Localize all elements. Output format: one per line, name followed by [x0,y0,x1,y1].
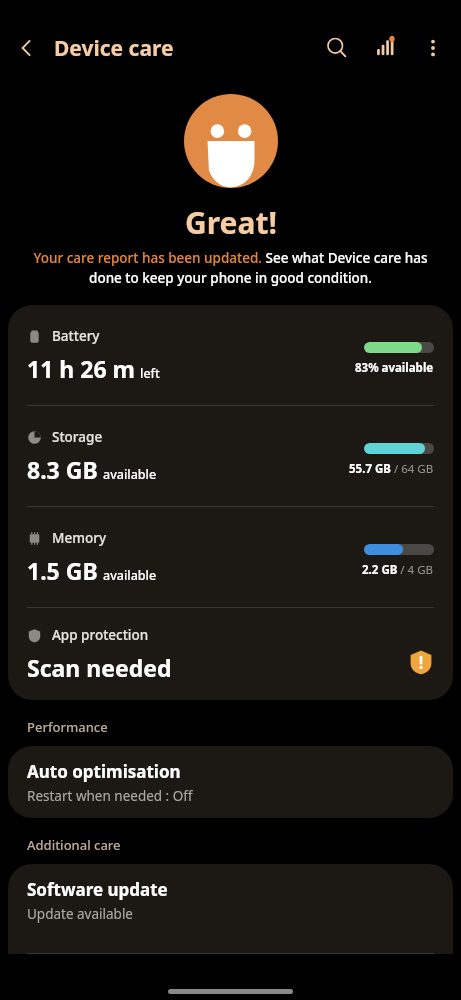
staticText: Storage [52,428,103,446]
button[interactable]: Memory [8,507,453,607]
staticText: Auto optimisation [27,760,181,783]
staticText: Software update [27,878,168,901]
staticText: left [140,365,160,382]
button[interactable]: More options [409,24,457,72]
staticText: Your care report has been updated. See w… [28,249,433,287]
button[interactable]: Storage [8,406,453,506]
staticText: 2.2 GB / 4 GB [362,562,434,578]
staticText: 8.3 GB [27,454,98,485]
staticText: 1.5 GB [27,555,98,586]
staticText: available [103,567,157,584]
staticText: Additional care [27,836,121,854]
staticText: Great! [185,202,277,243]
staticText: available [103,466,157,483]
staticText: 83% available [355,360,434,376]
staticText: Scan needed [27,652,172,683]
staticText: Memory [52,529,107,547]
button[interactable]: Auto optimisation [8,746,453,818]
button[interactable]: Battery [8,305,453,405]
staticText: Battery [52,327,100,345]
staticText: 11 h 26 m [27,353,135,384]
button[interactable]: App protection [8,608,453,700]
staticText: App protection [52,626,149,644]
staticText: Device care [54,34,174,63]
staticText: Update available [27,905,133,923]
button[interactable]: Software update [8,864,453,954]
button[interactable]: Back [0,22,54,74]
button[interactable]: Device care [54,34,174,63]
staticText: 55.7 GB / 64 GB [349,461,434,477]
button[interactable]: Diagnostics [361,24,409,72]
button[interactable]: Search [313,24,361,72]
staticText: Performance [27,718,108,736]
staticText: Restart when needed : Off [27,787,193,805]
